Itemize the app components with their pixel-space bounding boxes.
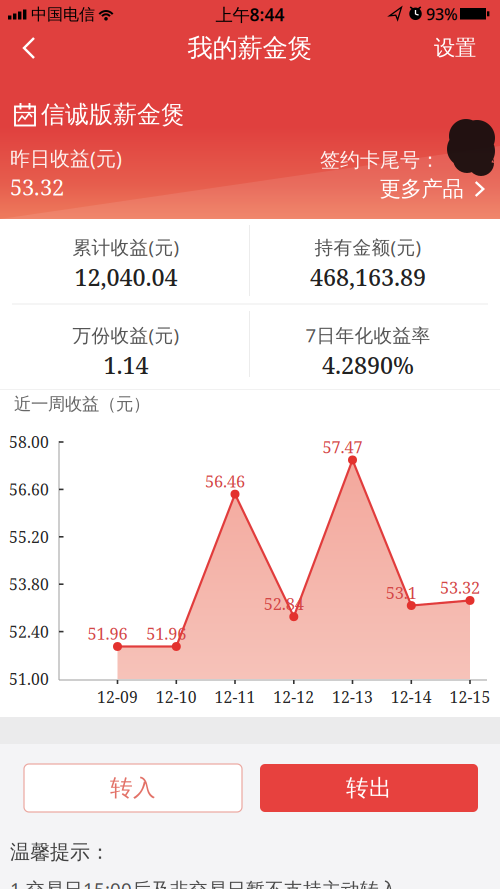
staticText: 93% xyxy=(426,3,458,25)
staticText: 4.2890% xyxy=(322,349,414,381)
button[interactable]: 转入 xyxy=(24,764,242,812)
staticText: 58.00 xyxy=(9,431,49,453)
staticText: 52.40 xyxy=(9,621,49,642)
staticText: 1.14 xyxy=(103,349,148,381)
staticText: 56.46 xyxy=(205,470,245,492)
staticText: 近一周收益（元） xyxy=(14,393,150,415)
staticText: 上午8:44 xyxy=(215,3,284,26)
staticText: 12-14 xyxy=(391,686,432,708)
staticText: 56.60 xyxy=(9,479,49,500)
staticText: 52.84 xyxy=(264,592,304,615)
staticText: 51.00 xyxy=(9,668,49,690)
staticText: 转出 xyxy=(346,774,392,802)
staticText: 12-13 xyxy=(332,686,373,708)
staticText: 转入 xyxy=(110,774,156,802)
staticText: 53.32 xyxy=(440,576,480,599)
staticText: 57.47 xyxy=(322,436,362,458)
staticText: 12-10 xyxy=(156,686,197,708)
staticText: 12,040.04 xyxy=(74,261,177,293)
staticText: 55.20 xyxy=(9,526,49,547)
staticText: 更多产品 xyxy=(379,176,463,202)
button[interactable]: 转出 xyxy=(260,764,478,812)
staticText: 万份收益(元) xyxy=(72,323,179,347)
staticText: 中国电信 xyxy=(31,5,95,24)
staticText: 签约卡尾号： xyxy=(320,148,440,172)
button[interactable]: 更多产品 xyxy=(379,176,484,202)
staticText: 12-09 xyxy=(97,686,138,708)
staticText: 累计收益(元) xyxy=(72,235,179,259)
staticText: 温馨提示： xyxy=(10,840,110,864)
staticText: 53.80 xyxy=(9,573,49,595)
staticText: 1.交易日15:00后及非交易日暂不支持主动转入 xyxy=(10,877,398,889)
staticText: 持有金额(元) xyxy=(314,235,421,259)
staticText: 468,163.89 xyxy=(310,261,426,293)
staticText: 我的薪金煲 xyxy=(187,32,312,63)
staticText: 12-15 xyxy=(449,686,490,708)
staticText: 53.1 xyxy=(386,581,417,604)
staticText: 12-12 xyxy=(273,686,314,708)
staticText: 设置 xyxy=(434,35,476,61)
staticText: 53.32 xyxy=(10,172,64,202)
staticText: 51.96 xyxy=(146,622,186,645)
staticText: 信诚版薪金煲 xyxy=(41,100,185,129)
button[interactable]: Back xyxy=(21,36,37,60)
button[interactable]: 设置 xyxy=(416,33,476,63)
staticText: 51.96 xyxy=(87,622,127,645)
staticText: 昨日收益(元) xyxy=(10,145,122,171)
staticText: 7日年化收益率 xyxy=(305,323,430,347)
staticText: 12-11 xyxy=(214,686,255,708)
